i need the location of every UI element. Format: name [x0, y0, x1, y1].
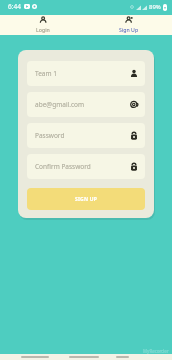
staticText: MyRecorder [143, 348, 169, 354]
staticText: 6:44 [8, 2, 21, 11]
button[interactable]: Back [21, 356, 49, 358]
staticText: 89% [149, 3, 161, 11]
staticText: Password [35, 131, 65, 140]
button[interactable]: Home [69, 356, 99, 358]
staticText: Team 1 [35, 69, 57, 78]
button[interactable]: Team 1 [27, 61, 145, 86]
staticText: abe@gmail.com [35, 100, 85, 109]
button[interactable]: Recents [116, 356, 129, 358]
staticText: SIGN UP [75, 196, 97, 203]
button[interactable]: abe@gmail.com [27, 92, 145, 117]
button[interactable]: Password [27, 123, 145, 148]
button[interactable]: SIGN UP [27, 188, 145, 210]
staticText: Confirm Password [35, 162, 91, 171]
button[interactable]: Login [0, 15, 86, 35]
staticText: Sign Up [119, 26, 139, 33]
staticText: Login [36, 26, 50, 33]
button[interactable]: Confirm Password [27, 154, 145, 179]
button[interactable]: Sign Up [86, 15, 172, 35]
